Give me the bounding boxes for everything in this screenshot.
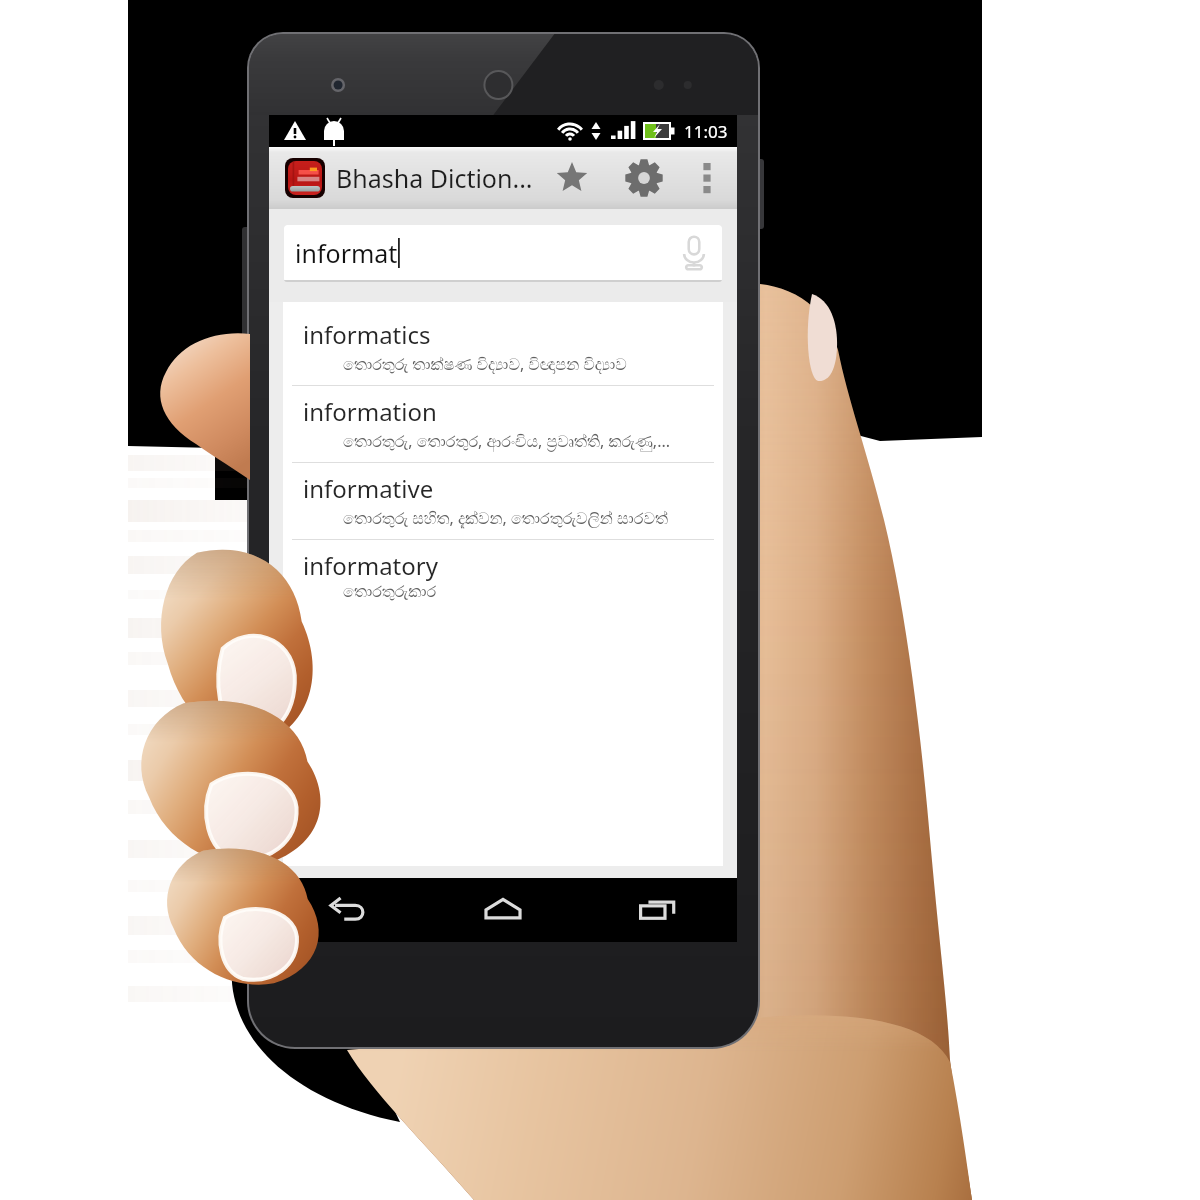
button[interactable]: Home [425,878,581,942]
staticText: informative [303,472,434,505]
button[interactable]: Favorites [547,153,597,203]
button[interactable]: informative [283,463,723,539]
button[interactable]: informatics [283,302,723,385]
staticText: තොරතුරු, තොරතුර, ආරංචිය, ප්‍රවෘත්ති, කරු… [343,430,671,452]
staticText: තොරතුරුකාර [343,584,437,600]
button[interactable]: Voice search [671,230,717,276]
staticText: තොරතුරු තාක්ෂණ විද්‍යාව, විඥාපන විද්‍යාව [343,353,627,375]
button[interactable]: Settings [619,153,669,203]
button[interactable]: informatory [283,540,723,616]
staticText: Bhasha Diction... [336,161,533,195]
staticText: තොරතුරු සහිත, දැක්වන, තොරතුරුවලින් සාරවත… [343,507,668,529]
button[interactable]: information [283,386,723,462]
button[interactable]: App icon [285,158,325,198]
staticText: information [303,395,437,428]
staticText: informatory [303,549,438,582]
button[interactable]: Recent apps [581,878,737,942]
button[interactable]: informat [284,225,722,280]
staticText: informatics [303,318,431,351]
staticText: informat [295,236,398,270]
button[interactable]: Back [269,878,425,942]
staticText: 11:03 [684,120,728,143]
button[interactable]: More options [687,158,727,198]
